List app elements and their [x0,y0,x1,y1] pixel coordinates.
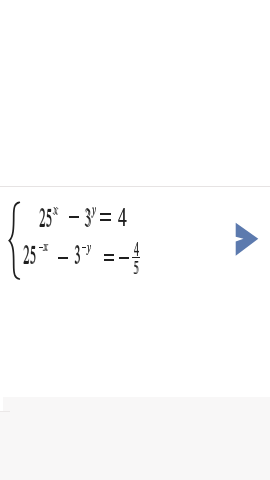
staticText: 4 [118,206,127,232]
staticText: x [53,203,57,218]
staticText: 5 [133,259,138,279]
staticText: 25 [39,206,52,232]
staticText: 4 [134,241,139,261]
staticText: 3 [74,244,81,270]
staticText: 3 [74,243,81,269]
staticText: x [44,240,48,255]
staticText: x [43,240,47,255]
staticText: 25 [23,244,36,270]
staticText: x [54,204,58,219]
staticText: 4 [134,241,139,261]
staticText: 3 [85,207,92,233]
staticText: y [87,241,91,256]
staticText: y [87,241,91,256]
staticText: 5 [134,259,139,279]
staticText: 3 [84,206,91,232]
staticText: 4 [118,206,127,232]
button[interactable] [0,188,228,296]
button[interactable] [231,218,264,261]
staticText: y [92,203,96,218]
staticText: 25 [23,243,36,269]
staticText: y [92,204,96,219]
staticText: 25 [39,207,52,233]
